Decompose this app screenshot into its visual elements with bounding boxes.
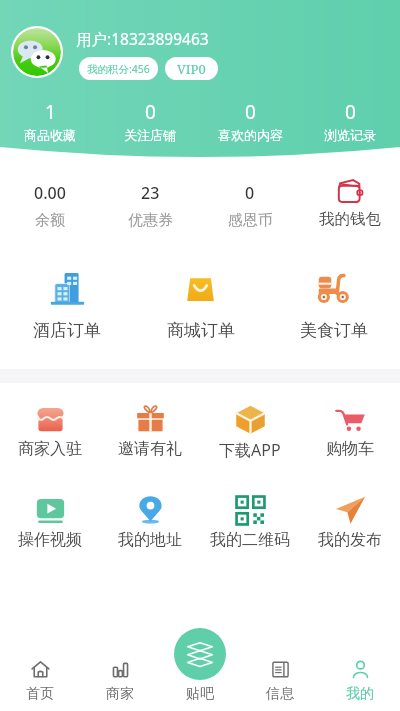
other: 邀请有礼 [135,404,166,435]
staticText: 我的二维码 [210,530,290,550]
staticText: 商城订单 [167,320,235,341]
staticText: 贴吧 [186,685,214,703]
other: 酒店订单 [49,270,86,307]
button[interactable]: 操作视频 [0,495,100,550]
staticText: 优惠券 [128,211,173,230]
staticText: 酒店订单 [33,320,101,341]
staticText: 商品收藏 [24,127,76,143]
staticText: 购物车 [326,439,374,459]
button[interactable]: 邀请有礼 [100,404,200,459]
staticText: 0 [245,182,255,204]
staticText: 感恩币 [228,211,273,230]
button[interactable]: 我的 [320,653,400,709]
staticText: 23 [141,182,160,204]
staticText: 余额 [35,211,65,230]
button[interactable]: 商家 [80,653,160,709]
other: 美食订单 [315,270,352,307]
other: 商家入驻 [35,404,66,435]
staticText: 信息 [266,685,294,703]
other: 操作视频 [35,495,66,526]
staticText: 我的钱包 [319,209,381,229]
button[interactable]: 0 [300,99,400,143]
staticText: 我的地址 [118,530,182,550]
staticText: 0 [245,99,256,125]
other: 我的钱包 [337,178,363,204]
staticText: 喜欢的内容 [218,127,283,143]
staticText: 0 [145,99,156,125]
button[interactable]: 我的地址 [100,495,200,550]
button[interactable]: 商城订单 [134,270,267,341]
button[interactable]: 贴吧 [174,628,226,680]
other: 我的地址 [135,495,166,526]
button[interactable]: 23 [100,182,200,230]
button[interactable]: 我的发布 [300,495,400,550]
staticText: 商家 [106,685,134,703]
button[interactable]: 酒店订单 [0,270,134,341]
button[interactable]: 0.00 [0,182,100,230]
button[interactable]: VIP0 [165,57,218,80]
staticText: 浏览记录 [324,127,376,143]
staticText: 0.00 [34,182,66,204]
staticText: 首页 [26,685,54,703]
button[interactable]: 信息 [240,653,320,709]
button[interactable]: 购物车 [300,404,400,459]
button[interactable]: 我的二维码 [200,495,300,550]
staticText: 我的发布 [318,530,382,550]
button[interactable]: 贴吧 [160,653,240,709]
button[interactable]: 0 [200,182,300,230]
staticText: 0 [345,99,356,125]
other: 购物车 [335,404,366,435]
staticText: 商家入驻 [18,439,82,459]
staticText: VIP0 [177,60,206,78]
staticText: 用户:18323899463 [76,28,209,49]
other: 商城订单 [182,270,219,307]
button[interactable]: 下载APP [200,404,300,461]
staticText: 下载APP [219,439,281,461]
button[interactable]: 0 [100,99,200,143]
button[interactable]: 商家入驻 [0,404,100,459]
button[interactable]: 首页 [0,653,80,709]
staticText: 操作视频 [18,530,82,550]
staticText: 关注店铺 [124,127,176,143]
button[interactable]: 0 [200,99,300,143]
button[interactable]: 我的钱包 [300,178,400,229]
button[interactable]: 美食订单 [267,270,400,341]
staticText: 1 [45,99,56,125]
staticText: 我的积分:456 [87,62,150,76]
other: 下载APP [235,404,266,435]
staticText: 我的 [346,685,374,703]
button[interactable]: 1 [0,99,100,143]
other: 我的二维码 [235,495,266,526]
other: 我的发布 [335,495,366,526]
button[interactable]: Avatar [11,26,63,78]
staticText: 美食订单 [300,320,368,341]
button[interactable]: 我的积分:456 [79,57,158,80]
staticText: 邀请有礼 [118,439,182,459]
